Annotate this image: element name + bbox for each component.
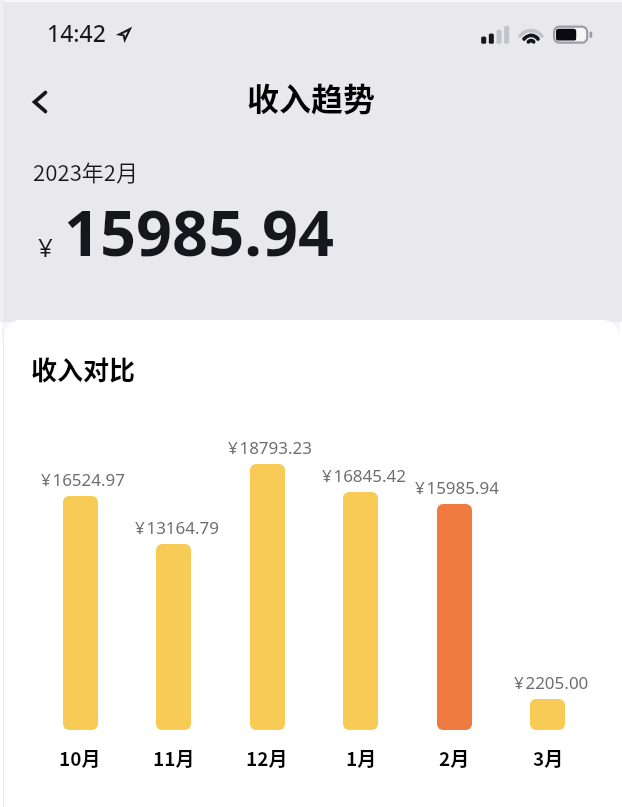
- button[interactable]: 3月: [530, 699, 565, 730]
- button[interactable]: 11月: [156, 544, 191, 730]
- button[interactable]: Back: [18, 80, 62, 124]
- staticText: 14:42: [47, 17, 106, 48]
- staticText: ¥ 16524.97: [41, 468, 126, 491]
- button[interactable]: 12月: [250, 464, 285, 730]
- staticText: ¥ 18793.23: [228, 436, 313, 459]
- staticText: 2月: [439, 744, 470, 772]
- staticText: 10月: [59, 744, 101, 772]
- staticText: ¥ 2205.00: [514, 671, 589, 694]
- staticText: 15985.94: [64, 189, 334, 275]
- staticText: 3月: [533, 744, 564, 772]
- button[interactable]: 2月: [437, 504, 472, 730]
- staticText: 收入对比: [31, 350, 136, 388]
- staticText: ¥ 16845.42: [322, 464, 407, 487]
- staticText: 收入趋势: [0, 74, 622, 120]
- staticText: 12月: [246, 744, 288, 772]
- staticText: ¥ 13164.79: [135, 516, 220, 539]
- staticText: 1月: [346, 744, 377, 772]
- staticText: 11月: [153, 744, 195, 772]
- button[interactable]: 1月: [343, 492, 378, 730]
- staticText: ¥ 15985.94: [415, 476, 500, 499]
- button[interactable]: 10月: [63, 496, 98, 730]
- staticText: 2023年2月: [33, 155, 139, 187]
- staticText: ¥: [38, 229, 53, 264]
